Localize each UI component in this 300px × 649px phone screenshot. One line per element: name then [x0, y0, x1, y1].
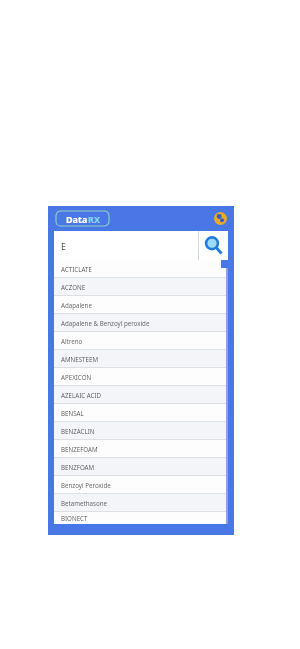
- button[interactable]: BENZEFOAM: [54, 440, 228, 457]
- button[interactable]: Data: [56, 211, 109, 226]
- staticText: APEXICON: [61, 373, 92, 381]
- staticText: Adapalene: [61, 301, 92, 309]
- button[interactable]: BENSAL: [54, 404, 228, 421]
- button[interactable]: BIONECT: [54, 512, 228, 524]
- button[interactable]: Account: [214, 212, 227, 225]
- button[interactable]: ACTICLATE: [54, 260, 228, 277]
- staticText: BIONECT: [61, 514, 88, 522]
- staticText: Adapalene & Benzoyl peroxide: [61, 319, 150, 327]
- button[interactable]: BENZFOAM: [54, 458, 228, 475]
- staticText: Altreno: [61, 337, 83, 345]
- staticText: RX: [88, 213, 100, 225]
- button[interactable]: Adapalene: [54, 296, 228, 313]
- button[interactable]: Search: [199, 231, 228, 260]
- button[interactable]: APEXICON: [54, 368, 228, 385]
- staticText: Betamethasone: [61, 499, 108, 507]
- staticText: BENZFOAM: [61, 463, 95, 471]
- button[interactable]: Betamethasone: [54, 494, 228, 511]
- staticText: ACTICLATE: [61, 265, 92, 273]
- staticText: BENZACLIN: [61, 427, 95, 435]
- staticText: BENZEFOAM: [61, 445, 98, 453]
- button[interactable]: Altreno: [54, 332, 228, 349]
- staticText: AZELAIC ACID: [61, 391, 102, 399]
- staticText: Benzoyl Peroxide: [61, 481, 111, 489]
- button[interactable]: AMNESTEEM: [54, 350, 228, 367]
- staticText: AMNESTEEM: [61, 355, 99, 363]
- button[interactable]: Adapalene & Benzoyl peroxide: [54, 314, 228, 331]
- button[interactable]: ACZONE: [54, 278, 228, 295]
- staticText: BENSAL: [61, 409, 84, 417]
- button[interactable]: BENZACLIN: [54, 422, 228, 439]
- button[interactable]: E: [54, 231, 198, 260]
- staticText: Data: [66, 213, 88, 225]
- staticText: ACZONE: [61, 283, 86, 291]
- button[interactable]: Benzoyl Peroxide: [54, 476, 228, 493]
- staticText: E: [61, 240, 67, 252]
- button[interactable]: AZELAIC ACID: [54, 386, 228, 403]
